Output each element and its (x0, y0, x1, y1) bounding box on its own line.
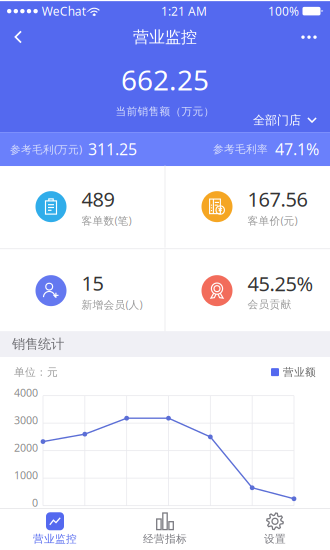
staticText: 新增会员(人) (81, 297, 142, 311)
staticText: 3000 (14, 413, 38, 427)
staticText: 设置 (264, 532, 286, 545)
staticText: 45.25% (247, 270, 313, 297)
staticText: 全部门店 (253, 113, 301, 128)
staticText: 单位：元 (14, 366, 58, 379)
staticText: 经营指标 (143, 532, 187, 545)
staticText: 会员贡献 (247, 298, 291, 311)
staticText: 营业额 (283, 366, 316, 379)
staticText: 489 (81, 186, 114, 212)
staticText: 47.1% (275, 138, 319, 160)
staticText: 311.25 (88, 138, 137, 160)
button[interactable]: 全部门店 (253, 112, 330, 128)
button[interactable]: More options (292, 21, 326, 53)
staticText: 0 (32, 496, 38, 510)
button[interactable]: Back (4, 21, 33, 53)
staticText: 当前销售额（万元） (115, 105, 214, 118)
staticText: WeChat (42, 3, 86, 19)
staticText: 1000 (14, 468, 38, 482)
button[interactable]: 设置 (220, 509, 330, 549)
staticText: 参考毛利(万元) (10, 142, 82, 156)
staticText: 销售统计 (12, 336, 64, 352)
staticText: 100% (268, 3, 299, 19)
staticText: 1:21 AM (161, 3, 207, 19)
staticText: 15 (81, 270, 103, 296)
button[interactable]: 营业监控 (0, 509, 110, 549)
staticText: 662.25 (121, 61, 209, 98)
staticText: 营业监控 (133, 27, 197, 47)
button[interactable]: 经营指标 (110, 509, 220, 549)
staticText: 参考毛利率 (213, 143, 268, 156)
staticText: 2000 (14, 441, 38, 455)
staticText: 167.56 (247, 186, 307, 212)
staticText: 4000 (14, 386, 38, 400)
staticText: 客单价(元) (247, 213, 297, 227)
staticText: 营业监控 (33, 532, 77, 545)
staticText: 客单数(笔) (81, 213, 131, 227)
